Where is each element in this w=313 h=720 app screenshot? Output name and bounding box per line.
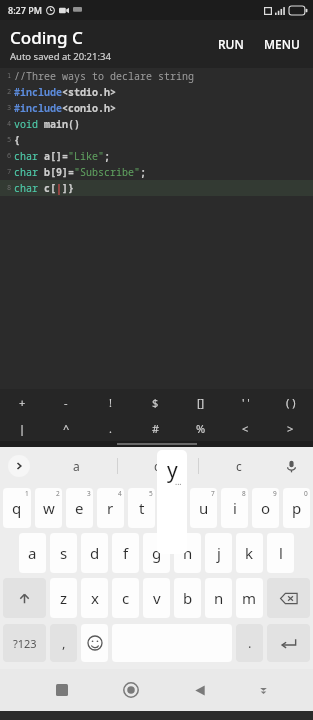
button[interactable]: j: [205, 533, 232, 573]
staticText: j: [217, 543, 221, 563]
staticText: ( ): [286, 395, 296, 410]
button[interactable]: Shift: [3, 578, 46, 618]
button[interactable]: i: [221, 488, 248, 528]
staticText: -: [64, 395, 68, 410]
button[interactable]: 5: [0, 132, 313, 148]
staticText: 8: [7, 183, 12, 193]
staticText: .: [248, 634, 252, 652]
button[interactable]: .: [236, 624, 263, 662]
button[interactable]: o: [252, 488, 279, 528]
staticText: 8:27 PM: [8, 4, 42, 16]
button[interactable]: Enter: [267, 624, 310, 662]
button[interactable]: Hide keyboard: [248, 675, 278, 705]
button[interactable]: Expand toolbar: [8, 455, 30, 477]
staticText: 1: [7, 71, 12, 81]
staticText: e: [75, 498, 84, 518]
button[interactable]: +: [0, 389, 44, 415]
button[interactable]: #: [133, 415, 178, 441]
button[interactable]: Back: [183, 673, 217, 707]
staticText: k: [245, 543, 254, 563]
button[interactable]: m: [236, 578, 263, 618]
button[interactable]: >: [268, 415, 313, 441]
button[interactable]: s: [50, 533, 77, 573]
staticText: #include<stdio.h>: [14, 85, 116, 99]
button[interactable]: ( ): [268, 389, 313, 415]
staticText: w: [43, 498, 55, 518]
button[interactable]: Voice input: [279, 454, 303, 478]
button[interactable]: 4: [0, 116, 313, 132]
staticText: char c[|]}: [14, 181, 74, 195]
button[interactable]: u: [190, 488, 217, 528]
staticText: g: [152, 543, 162, 563]
button[interactable]: k: [236, 533, 263, 573]
button[interactable]: 2: [0, 84, 313, 100]
button[interactable]: 8: [0, 180, 313, 196]
button[interactable]: ,: [50, 624, 77, 662]
button[interactable]: |: [0, 415, 44, 441]
staticText: 6: [7, 151, 12, 161]
button[interactable]: l: [267, 533, 294, 573]
button[interactable]: .: [88, 415, 133, 441]
button[interactable]: Emoji: [81, 624, 108, 662]
staticText: z: [60, 588, 68, 608]
button[interactable]: f: [112, 533, 139, 573]
button[interactable]: <: [223, 415, 268, 441]
button[interactable]: ' ': [223, 389, 268, 415]
button[interactable]: Recents: [45, 673, 79, 707]
button[interactable]: n: [205, 578, 232, 618]
staticText: 7: [7, 167, 12, 177]
button[interactable]: x: [81, 578, 108, 618]
button[interactable]: 6: [0, 148, 313, 164]
staticText: %: [196, 421, 206, 436]
button[interactable]: d: [118, 447, 198, 485]
button[interactable]: $: [133, 389, 178, 415]
button[interactable]: g: [143, 533, 170, 573]
button[interactable]: a: [19, 533, 46, 573]
button[interactable]: Home: [114, 673, 148, 707]
button[interactable]: b: [174, 578, 201, 618]
button[interactable]: 1: [0, 68, 313, 84]
staticText: c: [122, 588, 130, 608]
button[interactable]: c: [199, 447, 279, 485]
staticText: 4: [7, 119, 12, 129]
button[interactable]: %: [178, 415, 223, 441]
button[interactable]: r: [97, 488, 124, 528]
staticText: MENU: [264, 36, 300, 52]
button[interactable]: c: [112, 578, 139, 618]
staticText: ...: [175, 476, 182, 487]
staticText: char a[]="Like";: [14, 149, 110, 163]
button[interactable]: !: [88, 389, 133, 415]
button[interactable]: ^: [44, 415, 88, 441]
button[interactable]: MENU: [259, 32, 305, 56]
button[interactable]: 7: [0, 164, 313, 180]
button[interactable]: z: [50, 578, 77, 618]
staticText: 3: [7, 103, 12, 113]
button[interactable]: RUN: [213, 32, 249, 56]
button[interactable]: d: [81, 533, 108, 573]
button[interactable]: []: [178, 389, 223, 415]
button[interactable]: p: [283, 488, 310, 528]
button[interactable]: t: [128, 488, 155, 528]
button[interactable]: w: [35, 488, 62, 528]
staticText: 7: [211, 489, 215, 498]
button[interactable]: e: [66, 488, 93, 528]
staticText: 5: [7, 135, 12, 145]
button[interactable]: Backspace: [267, 578, 310, 618]
button[interactable]: v: [143, 578, 170, 618]
button[interactable]: a: [36, 447, 117, 485]
staticText: .: [109, 421, 112, 436]
staticText: Coding C: [10, 26, 83, 49]
staticText: |: [19, 421, 26, 436]
button[interactable]: -: [44, 389, 88, 415]
staticText: h: [183, 543, 193, 563]
staticText: {: [14, 133, 20, 147]
button[interactable]: q: [3, 488, 31, 528]
staticText: >: [287, 421, 294, 436]
button[interactable]: 3: [0, 100, 313, 116]
staticText: void main(): [14, 117, 80, 131]
button[interactable]: ?123: [3, 624, 46, 662]
button[interactable]: h: [174, 533, 201, 573]
